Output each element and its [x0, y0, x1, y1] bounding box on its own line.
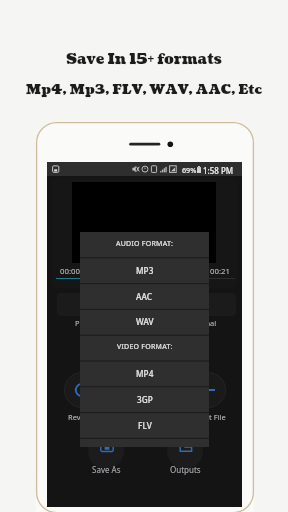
staticText: WAV: [136, 316, 154, 327]
staticText: 00:21: [210, 266, 230, 277]
staticText: MP4: [136, 368, 154, 379]
button[interactable]: AAC: [80, 284, 209, 310]
button[interactable]: WAV: [80, 309, 209, 335]
button[interactable]: MP3: [80, 258, 209, 284]
staticText: Mp4, Mp3, FLV, WAV, AAC, Etc: [0, 80, 288, 99]
staticText: Original: [188, 318, 217, 328]
button[interactable]: Save As: [82, 437, 130, 481]
button[interactable]: Select File: [190, 372, 226, 422]
button[interactable]: VIDEO FORMAT:: [80, 335, 209, 361]
button[interactable]: Outputs: [161, 437, 209, 481]
button[interactable]: MP4: [80, 361, 209, 387]
staticText: 69%: [182, 165, 197, 175]
staticText: Save As: [92, 464, 121, 475]
staticText: AAC: [136, 291, 153, 302]
staticText: FLV: [138, 420, 152, 431]
staticText: 1:58 PM: [203, 165, 234, 176]
staticText: 00:00: [60, 266, 80, 277]
staticText: Play: [75, 318, 90, 328]
staticText: 3GP: [137, 394, 153, 405]
staticText: Save In 15+ formats: [0, 49, 288, 69]
button[interactable]: 3GP: [80, 387, 209, 413]
button[interactable]: Reverse: [64, 372, 100, 422]
staticText: AUDIO FORMAT:: [116, 239, 174, 249]
staticText: Select File: [191, 412, 226, 422]
staticText: Outputs: [170, 464, 201, 475]
staticText: Reverse: [68, 412, 96, 422]
button[interactable]: FLV: [80, 413, 209, 439]
staticText: VIDEO FORMAT:: [117, 342, 173, 352]
staticText: MP3: [136, 265, 154, 276]
button[interactable]: AUDIO FORMAT:: [80, 232, 209, 258]
